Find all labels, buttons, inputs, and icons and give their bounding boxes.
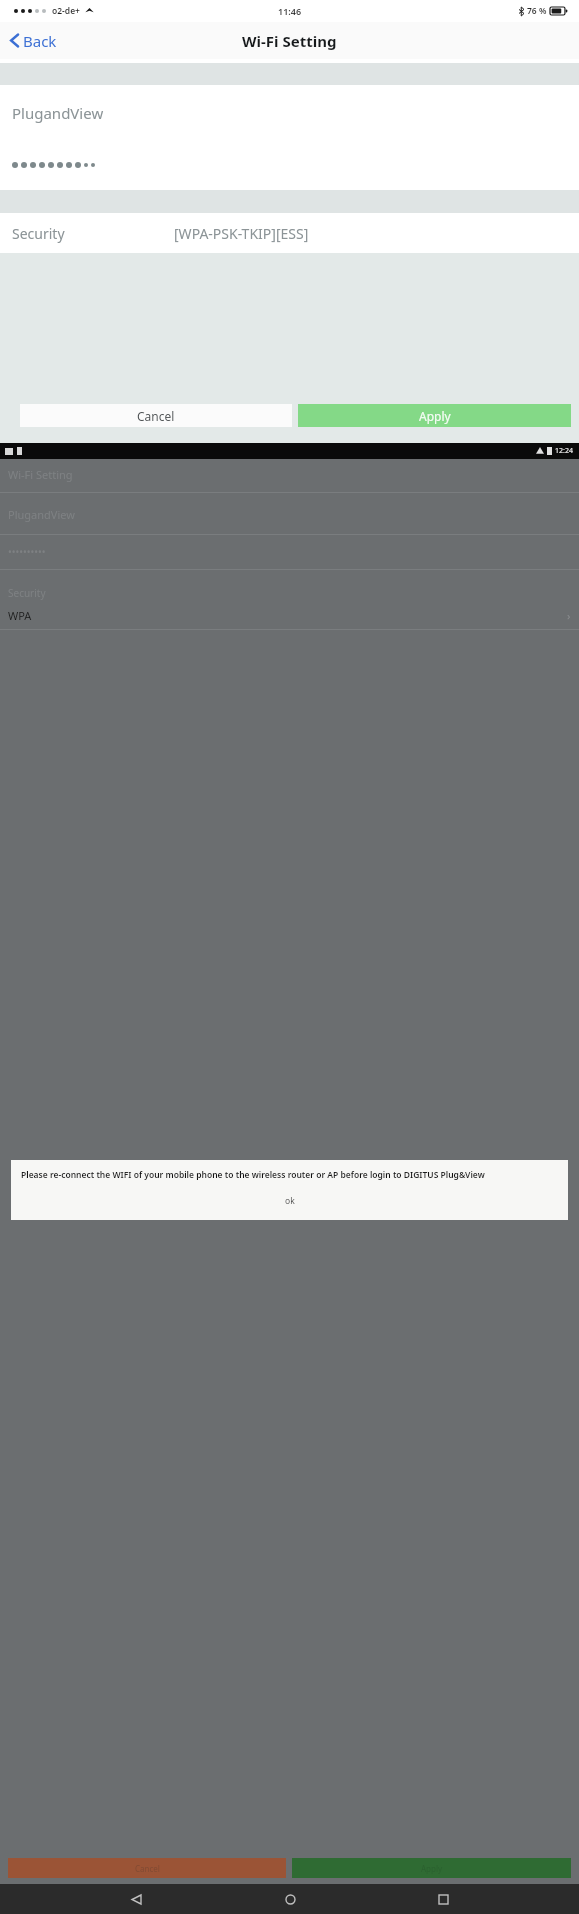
button[interactable]: Apply bbox=[298, 404, 571, 427]
staticText: o2-de+ bbox=[52, 5, 80, 17]
staticText: Cancel bbox=[137, 408, 175, 424]
staticText: Apply bbox=[419, 408, 451, 424]
button[interactable]: Security bbox=[0, 213, 579, 253]
staticText: PlugandView bbox=[12, 103, 104, 123]
staticText: 11:46 bbox=[278, 5, 302, 17]
button[interactable]: Back bbox=[0, 22, 67, 59]
button[interactable]: Cancel bbox=[20, 404, 292, 427]
staticText: Security bbox=[8, 586, 46, 600]
button[interactable] bbox=[0, 140, 579, 190]
button[interactable]: Home bbox=[273, 1884, 307, 1914]
staticText: [WPA-PSK-TKIP][ESS] bbox=[174, 224, 309, 243]
staticText: •••••••••• bbox=[8, 545, 46, 559]
button[interactable]: PlugandView bbox=[0, 85, 579, 140]
staticText: ok bbox=[285, 1195, 295, 1207]
staticText: Please re-connect the WIFI of your mobil… bbox=[21, 1169, 485, 1181]
staticText: 76 % bbox=[527, 5, 547, 17]
staticText: Wi-Fi Setting bbox=[242, 31, 337, 51]
staticText: Wi-Fi Setting bbox=[8, 467, 73, 482]
staticText: 12:24 bbox=[555, 446, 573, 456]
staticText: Cancel bbox=[135, 1863, 160, 1874]
staticText: WPA bbox=[8, 608, 32, 623]
staticText: PlugandView bbox=[8, 507, 75, 522]
button[interactable]: ok bbox=[21, 1195, 558, 1207]
staticText: Security bbox=[12, 224, 65, 243]
staticText: Back bbox=[23, 31, 57, 51]
button[interactable]: Recents bbox=[426, 1884, 460, 1914]
staticText: › bbox=[567, 608, 571, 623]
button[interactable]: Back bbox=[119, 1884, 153, 1914]
